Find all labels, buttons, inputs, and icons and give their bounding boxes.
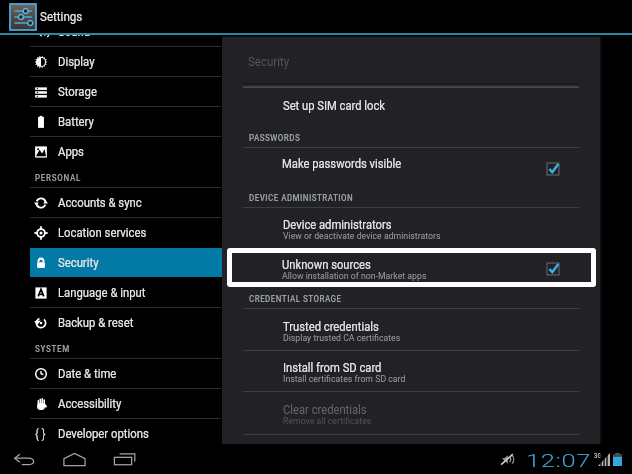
button[interactable]: Unknown sources	[232, 253, 591, 282]
button[interactable]: Security	[30, 248, 222, 277]
staticText: Security	[58, 256, 99, 270]
button[interactable]: Display	[30, 47, 222, 76]
staticText: CREDENTIAL STORAGE	[249, 294, 342, 304]
button[interactable]: Recent apps	[110, 446, 138, 472]
staticText: Battery	[58, 115, 95, 129]
staticText: Backup & reset	[58, 316, 133, 330]
button[interactable]: Home	[60, 446, 88, 472]
staticText: Make passwords visible	[282, 157, 402, 171]
staticText: Unknown sources	[282, 258, 371, 272]
button[interactable]: Apps	[30, 137, 222, 166]
staticText: Settings	[40, 9, 82, 24]
button[interactable]: Make passwords visible	[222, 147, 600, 180]
button[interactable]: Language & input	[30, 278, 222, 307]
staticText: Clear credentials	[283, 403, 367, 417]
staticText: DEVICE ADMINISTRATION	[249, 193, 354, 203]
button[interactable]: Date & time	[30, 359, 222, 388]
staticText: Trusted credentials	[283, 320, 380, 334]
staticText: View or deactivate device administrators	[283, 230, 441, 241]
staticText: Set up SIM card lock	[283, 99, 385, 113]
staticText: Developer options	[58, 427, 149, 441]
button[interactable]: Storage	[30, 77, 222, 106]
staticText: Security	[248, 54, 289, 69]
staticText: PASSWORDS	[249, 133, 301, 143]
button[interactable]: Set up SIM card lock	[222, 90, 600, 122]
button[interactable]: Backup & reset	[30, 308, 222, 337]
staticText: Location services	[58, 226, 147, 240]
staticText: 3G	[594, 452, 602, 460]
staticText: Accounts & sync	[58, 196, 142, 210]
button[interactable]: Accessibility	[30, 389, 222, 418]
button[interactable]: Location services	[30, 218, 222, 247]
staticText: Install certificates from SD card	[283, 373, 406, 384]
staticText: Display	[58, 55, 95, 69]
staticText: Language & input	[58, 286, 146, 300]
button[interactable]: Sound	[30, 17, 222, 46]
button[interactable]: Battery	[30, 107, 222, 136]
button[interactable]: Clear credentials	[222, 391, 600, 433]
button[interactable]: Accounts & sync	[30, 188, 222, 217]
staticText: Sound	[58, 25, 90, 39]
staticText: Display trusted CA certificates	[283, 332, 401, 343]
staticText: Device administrators	[283, 218, 392, 232]
button[interactable]: Back	[10, 446, 39, 472]
staticText: 12:07	[526, 450, 591, 471]
staticText: PERSONAL	[35, 173, 81, 183]
button[interactable]: Device administrators	[222, 207, 600, 248]
staticText: Install from SD card	[283, 361, 381, 375]
staticText: SYSTEM	[35, 344, 70, 354]
button[interactable]: { }	[30, 419, 222, 448]
staticText: { }	[35, 426, 46, 441]
staticText: Allow installation of non-Market apps	[282, 270, 426, 281]
button[interactable]: Install from SD card	[222, 350, 600, 391]
staticText: Storage	[58, 85, 98, 99]
button[interactable]: Trusted credentials	[222, 308, 600, 350]
staticText: Date & time	[58, 367, 117, 381]
staticText: Accessibility	[58, 397, 121, 411]
staticText: Remove all certificates	[283, 415, 371, 426]
staticText: Apps	[58, 145, 85, 159]
